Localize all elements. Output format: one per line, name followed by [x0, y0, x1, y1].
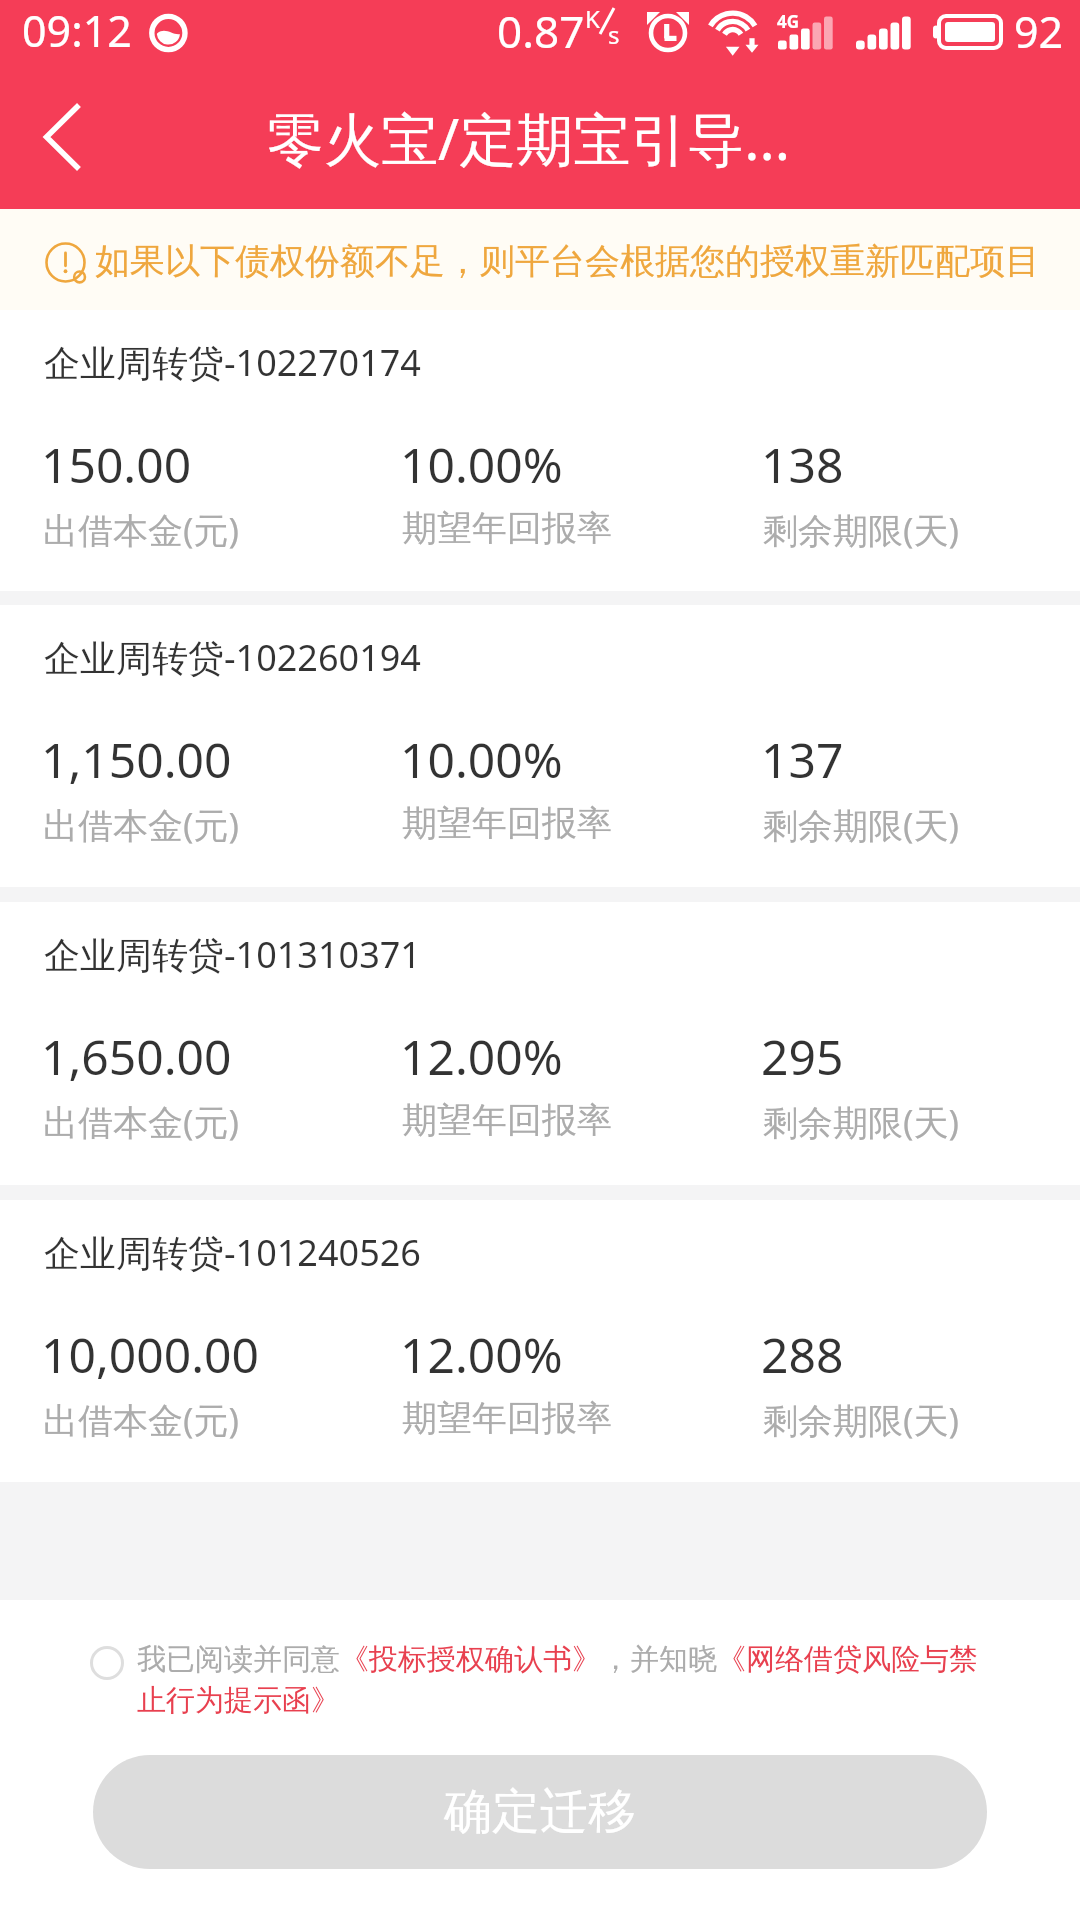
staticText: 我已阅读并同意《投标授权确认书》，并知晓《网络借贷风险与禁	[137, 1641, 978, 1678]
staticText: 出借本金(元)	[43, 801, 240, 849]
staticText: 295	[761, 1024, 844, 1089]
staticText: 期望年回报率	[402, 506, 612, 550]
staticText: 09:12	[22, 1, 132, 60]
staticText: K	[585, 2, 600, 35]
staticText: 137	[761, 727, 844, 792]
staticText: 0.87	[497, 1, 585, 61]
staticText: 4G	[777, 10, 800, 33]
staticText: 12.00%	[400, 1024, 563, 1089]
button[interactable]: 企业周转贷-101310371	[0, 902, 1080, 1185]
staticText: 10.00%	[400, 432, 563, 497]
staticText: 零火宝/定期宝引导...	[267, 99, 791, 177]
button[interactable]: Agree to terms checkbox	[90, 1646, 124, 1680]
staticText: s	[608, 18, 620, 51]
staticText: 150.00	[41, 432, 192, 497]
staticText: 期望年回报率	[402, 1098, 612, 1142]
staticText: 10,000.00	[41, 1322, 259, 1387]
button[interactable]: 企业周转贷-102260194	[0, 605, 1080, 887]
staticText: 10.00%	[400, 727, 563, 792]
staticText: 剩余期限(天)	[763, 1396, 960, 1444]
staticText: 期望年回报率	[402, 1396, 612, 1440]
button[interactable]: 企业周转贷-102270174	[0, 310, 1080, 591]
staticText: 138	[761, 432, 844, 497]
staticText: 92	[1014, 2, 1064, 61]
staticText: 1,650.00	[41, 1024, 232, 1089]
button[interactable]: 止行为提示函》	[137, 1682, 340, 1719]
staticText: 288	[761, 1322, 844, 1387]
staticText: 1,150.00	[41, 727, 232, 792]
staticText: 期望年回报率	[402, 801, 612, 845]
staticText: 出借本金(元)	[43, 1396, 240, 1444]
button[interactable]: Back	[0, 62, 120, 209]
staticText: 剩余期限(天)	[763, 801, 960, 849]
button[interactable]: 确定迁移	[93, 1755, 987, 1869]
button[interactable]: 我已阅读并同意《投标授权确认书》，并知晓《网络借贷风险与禁	[137, 1641, 978, 1678]
staticText: 确定迁移	[444, 1782, 636, 1842]
staticText: 如果以下债权份额不足，则平台会根据您的授权重新匹配项目	[95, 239, 1040, 283]
staticText: 企业周转贷-101310371	[44, 930, 421, 979]
button[interactable]: 企业周转贷-101240526	[0, 1200, 1080, 1482]
staticText: 企业周转贷-102270174	[44, 338, 421, 387]
staticText: 企业周转贷-102260194	[44, 633, 421, 682]
staticText: 12.00%	[400, 1322, 563, 1387]
staticText: 出借本金(元)	[43, 506, 240, 554]
staticText: 剩余期限(天)	[763, 506, 960, 554]
staticText: 企业周转贷-101240526	[44, 1228, 421, 1277]
staticText: 剩余期限(天)	[763, 1098, 960, 1146]
staticText: 止行为提示函》	[137, 1682, 340, 1719]
staticText: 出借本金(元)	[43, 1098, 240, 1146]
